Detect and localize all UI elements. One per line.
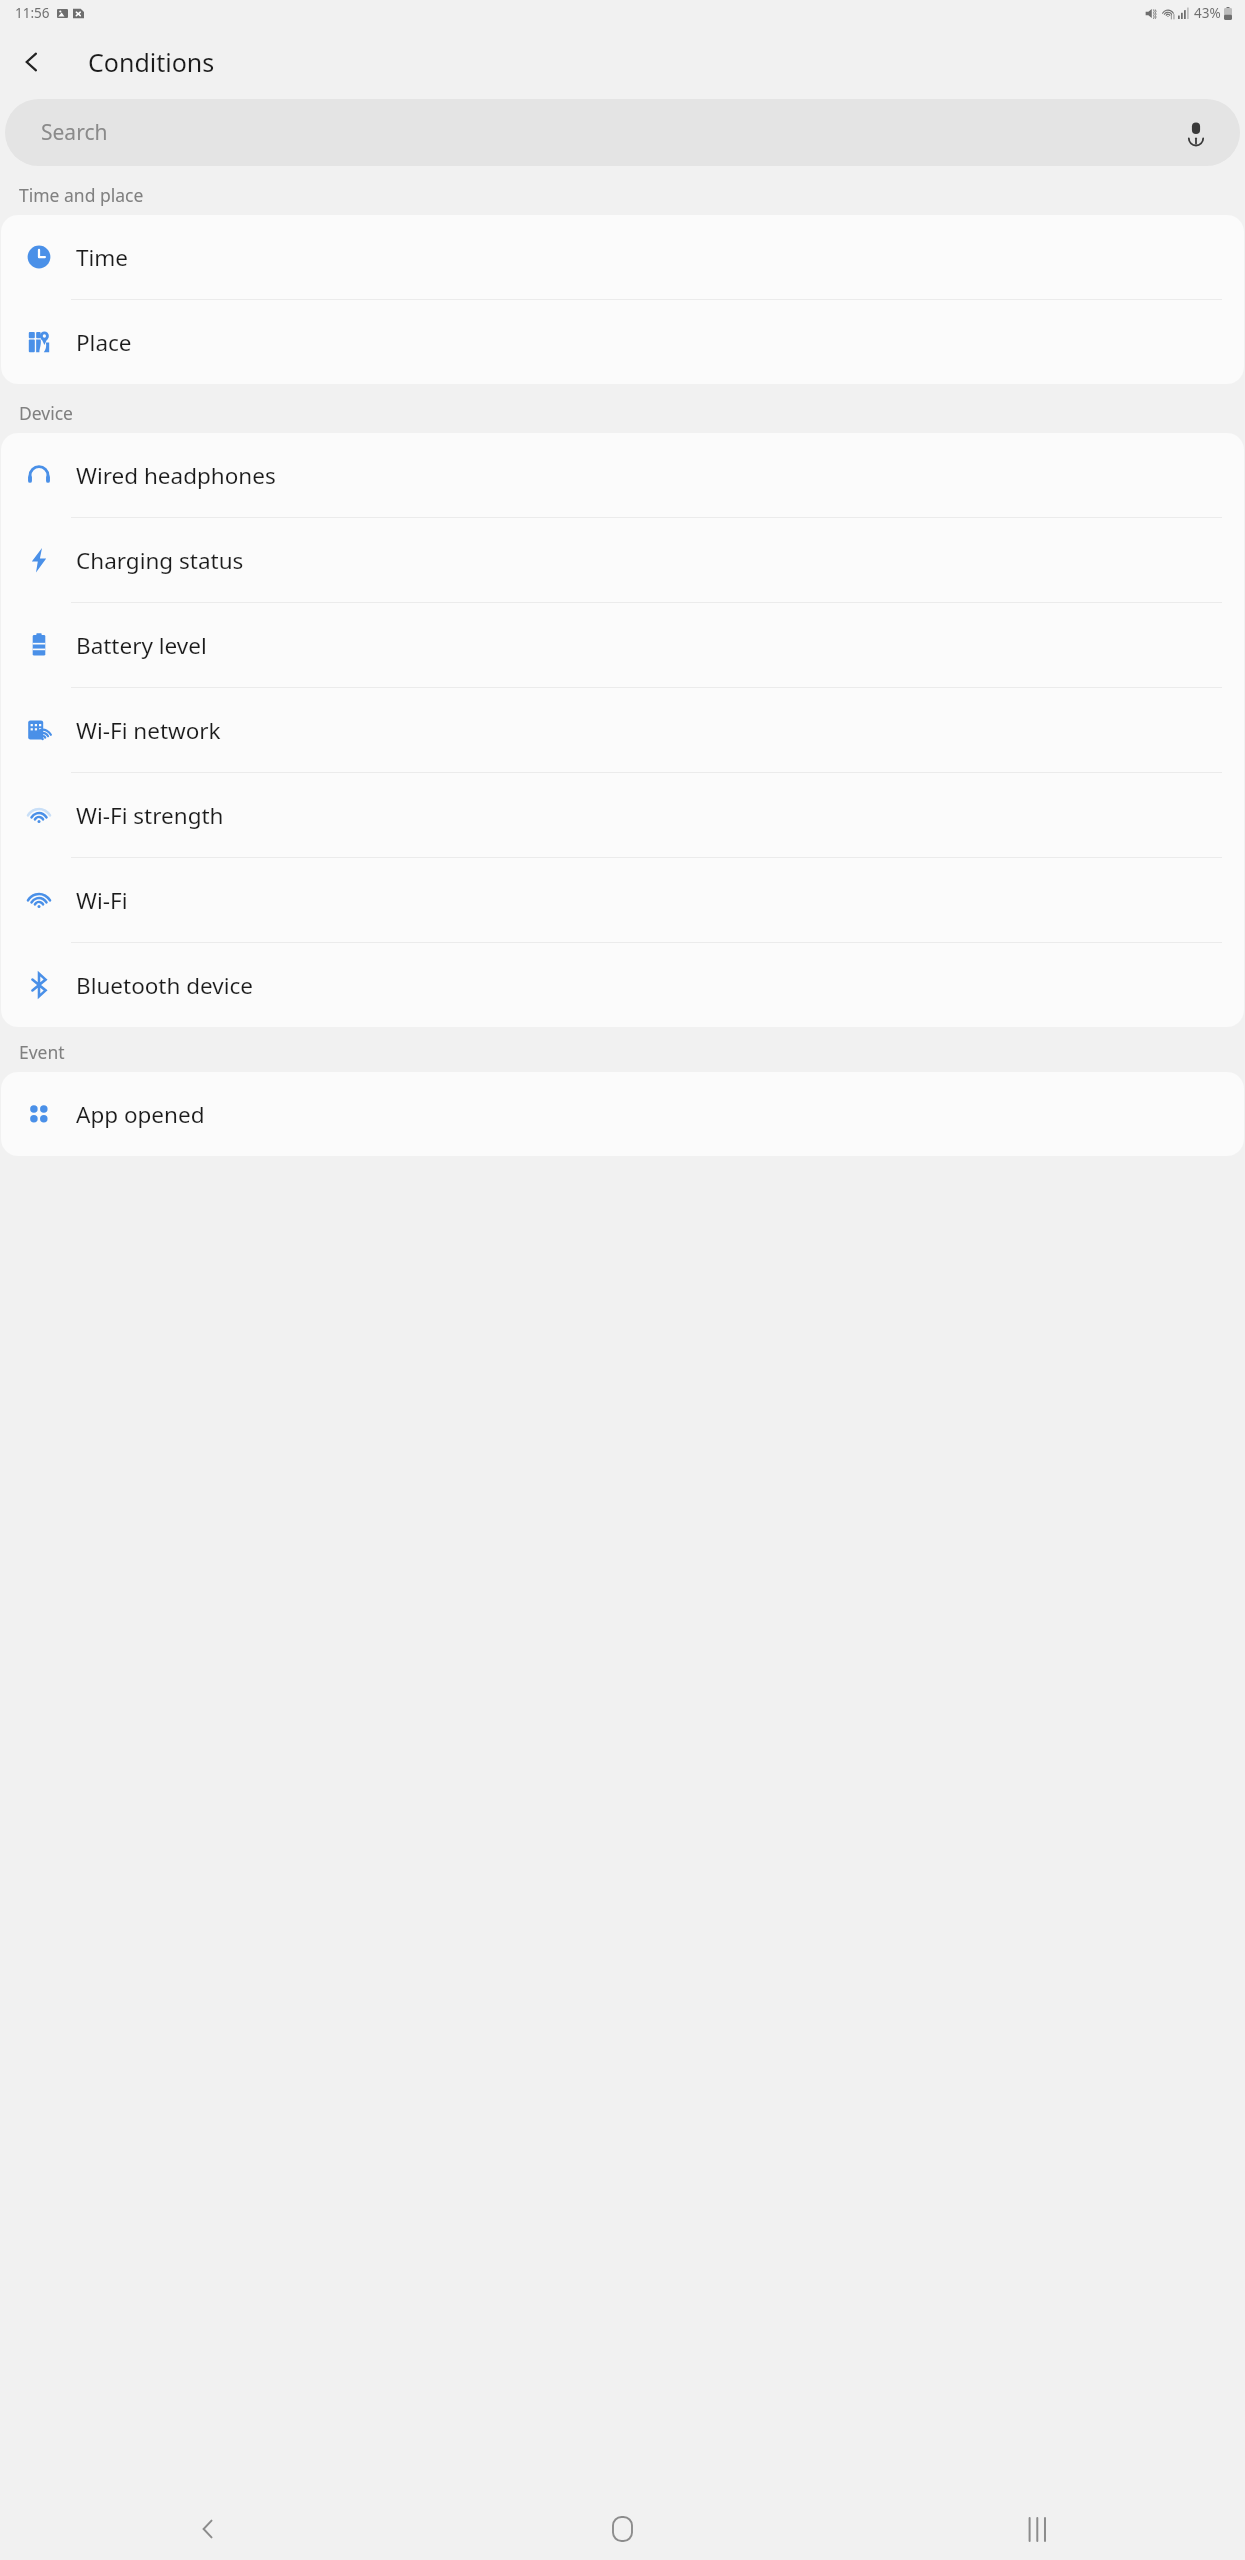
button[interactable]: Battery level: [1, 603, 1244, 687]
staticText: Wi-Fi: [76, 885, 128, 916]
staticText: Bluetooth device: [76, 970, 254, 1001]
button[interactable]: Wi-Fi network: [1, 688, 1244, 772]
staticText: Battery level: [76, 630, 207, 661]
staticText: Search: [41, 118, 108, 147]
button[interactable]: Voice search: [1176, 113, 1216, 153]
staticText: Event: [19, 1040, 65, 1064]
button[interactable]: Recent apps: [830, 2498, 1245, 2560]
staticText: App opened: [76, 1099, 205, 1130]
button[interactable]: Wired headphones: [1, 433, 1244, 517]
button[interactable]: Bluetooth device: [1, 943, 1244, 1027]
staticText: Device: [19, 401, 73, 425]
button[interactable]: App opened: [1, 1072, 1244, 1156]
button[interactable]: Wi-Fi strength: [1, 773, 1244, 857]
button[interactable]: Back: [0, 2498, 415, 2560]
staticText: Charging status: [76, 545, 244, 576]
button[interactable]: Search: [5, 99, 1240, 166]
button[interactable]: Home: [415, 2498, 830, 2560]
staticText: 43%: [1194, 4, 1221, 22]
button[interactable]: Back: [8, 38, 56, 86]
button[interactable]: Time: [1, 215, 1244, 299]
staticText: Time: [76, 242, 129, 273]
staticText: Wi-Fi network: [76, 715, 221, 746]
staticText: Time and place: [19, 183, 144, 207]
staticText: Wi-Fi strength: [76, 800, 224, 831]
button[interactable]: Wi-Fi: [1, 858, 1244, 942]
staticText: Wired headphones: [76, 460, 276, 491]
staticText: 11:56: [15, 4, 50, 22]
button[interactable]: Place: [1, 300, 1244, 384]
staticText: Place: [76, 327, 132, 358]
staticText: Conditions: [88, 45, 215, 79]
button[interactable]: Charging status: [1, 518, 1244, 602]
